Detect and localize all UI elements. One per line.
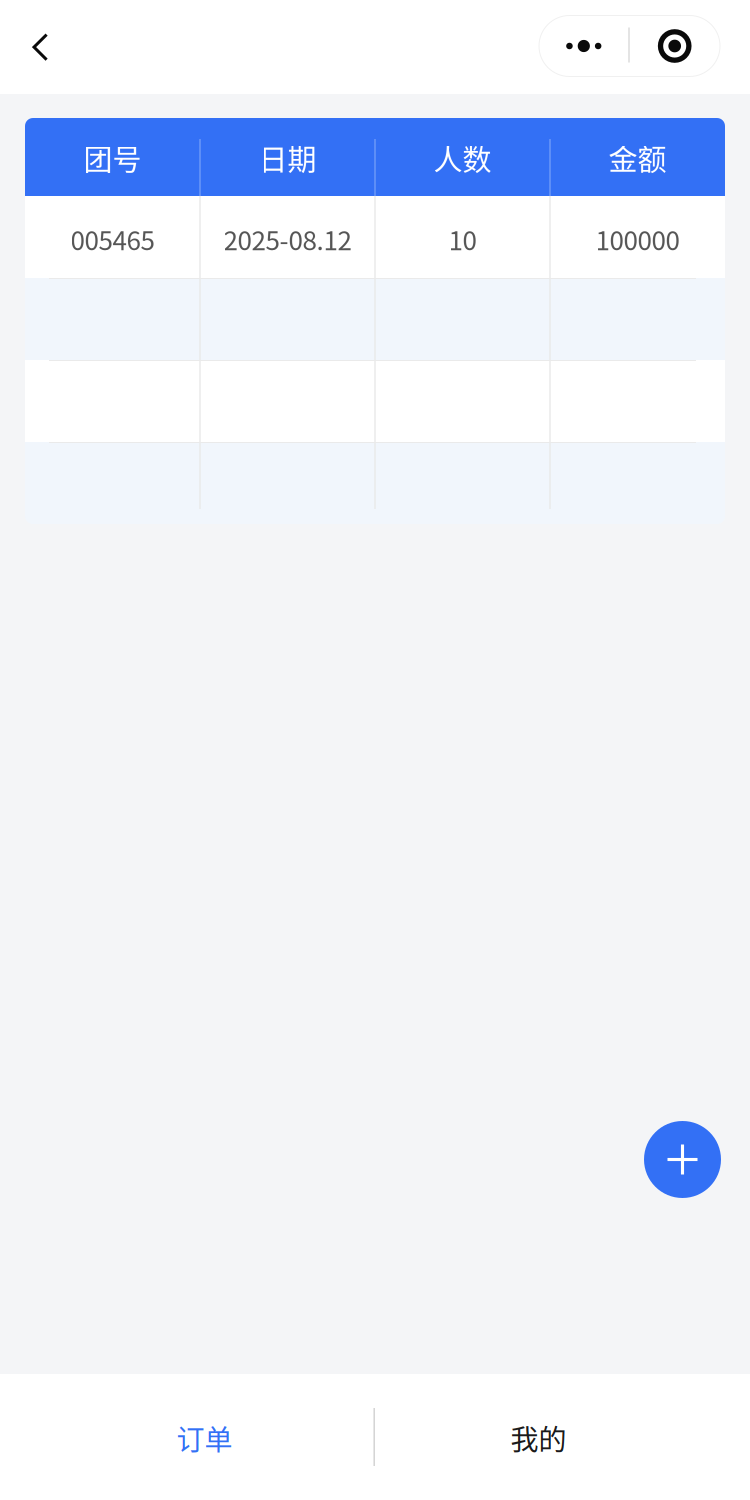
staticText: 10 [448, 220, 476, 258]
button[interactable]: 我的 [374, 1374, 750, 1500]
staticText: 005465 [70, 220, 154, 258]
staticText: 人数 [433, 137, 491, 179]
staticText: 2025-08.12 [223, 220, 351, 258]
staticText: 日期 [258, 137, 316, 179]
button[interactable]: Add order [644, 1121, 721, 1198]
staticText: 订单 [176, 1418, 232, 1458]
staticText: 金额 [608, 137, 666, 179]
staticText: 100000 [595, 220, 679, 258]
button[interactable]: Back [4, 11, 76, 83]
button[interactable]: 订单 [0, 1374, 374, 1500]
staticText: 我的 [510, 1418, 566, 1458]
button[interactable]: More options and close mini program [539, 16, 720, 77]
staticText: 团号 [83, 137, 141, 179]
